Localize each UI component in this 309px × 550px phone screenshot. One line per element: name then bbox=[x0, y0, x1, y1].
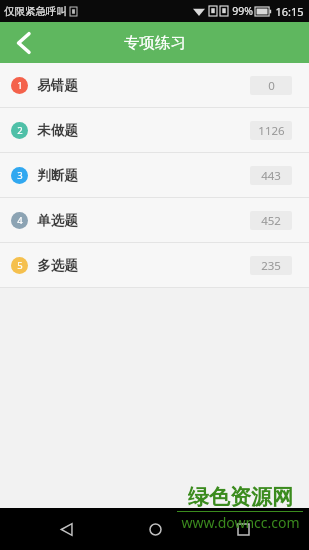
button[interactable]: Recents bbox=[220, 508, 266, 550]
button[interactable]: 5 bbox=[0, 243, 309, 287]
staticText: 99% bbox=[232, 4, 253, 18]
staticText: 1 bbox=[17, 79, 23, 92]
staticText: 443 bbox=[261, 168, 281, 184]
staticText: www.downcc.com bbox=[181, 513, 300, 532]
button[interactable]: Home bbox=[132, 508, 178, 550]
button[interactable]: 3 bbox=[0, 153, 309, 197]
staticText: 5 bbox=[17, 259, 23, 272]
staticText: 235 bbox=[261, 258, 281, 274]
staticText: 3 bbox=[17, 169, 23, 182]
staticText: 多选题 bbox=[37, 257, 78, 274]
staticText: 1126 bbox=[258, 123, 285, 139]
staticText: 专项练习 bbox=[124, 33, 186, 53]
button[interactable]: Back bbox=[43, 508, 89, 550]
staticText: 易错题 bbox=[37, 77, 78, 94]
staticText: 452 bbox=[261, 213, 281, 229]
button[interactable]: 4 bbox=[0, 198, 309, 242]
button[interactable]: 1 bbox=[0, 63, 309, 107]
button[interactable]: 2 bbox=[0, 108, 309, 152]
button[interactable]: Back bbox=[0, 22, 46, 63]
staticText: 判断题 bbox=[37, 167, 78, 184]
staticText: 绿色资源网 bbox=[188, 484, 293, 510]
staticText: 0 bbox=[268, 78, 275, 94]
staticText: 16:15 bbox=[275, 4, 304, 19]
staticText: 2 bbox=[17, 124, 23, 137]
staticText: 单选题 bbox=[37, 212, 78, 229]
staticText: 4 bbox=[17, 214, 23, 227]
staticText: 仅限紧急呼叫 bbox=[4, 5, 67, 18]
staticText: 未做题 bbox=[37, 122, 78, 139]
